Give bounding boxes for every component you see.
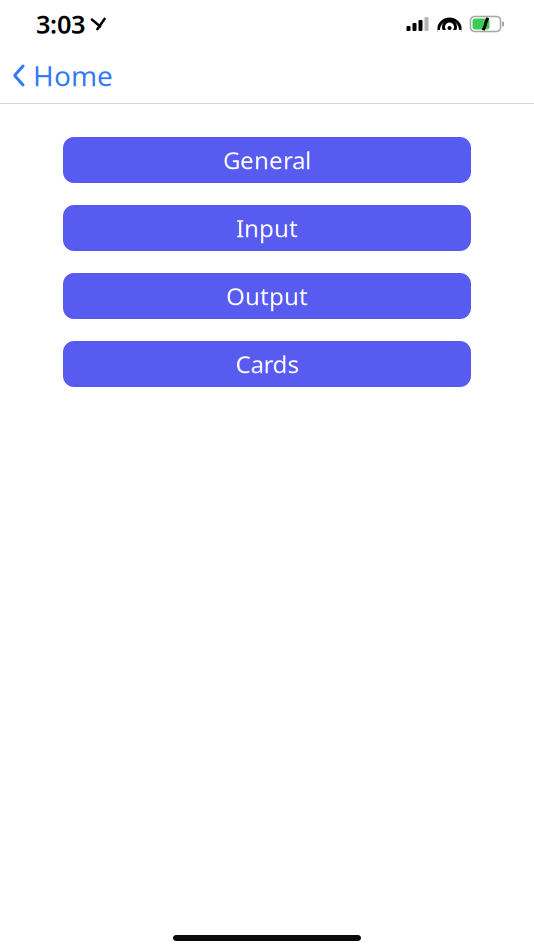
staticText: General (223, 144, 311, 176)
staticText: 3:03 (36, 7, 85, 41)
button[interactable]: Home (0, 49, 123, 102)
button[interactable]: Input (63, 205, 471, 251)
staticText: Input (236, 212, 298, 244)
staticText: Cards (235, 348, 298, 380)
button[interactable]: Cards (63, 341, 471, 387)
staticText: Output (226, 280, 308, 312)
button[interactable]: Output (63, 273, 471, 319)
button[interactable]: General (63, 137, 471, 183)
staticText: Home (33, 57, 113, 94)
